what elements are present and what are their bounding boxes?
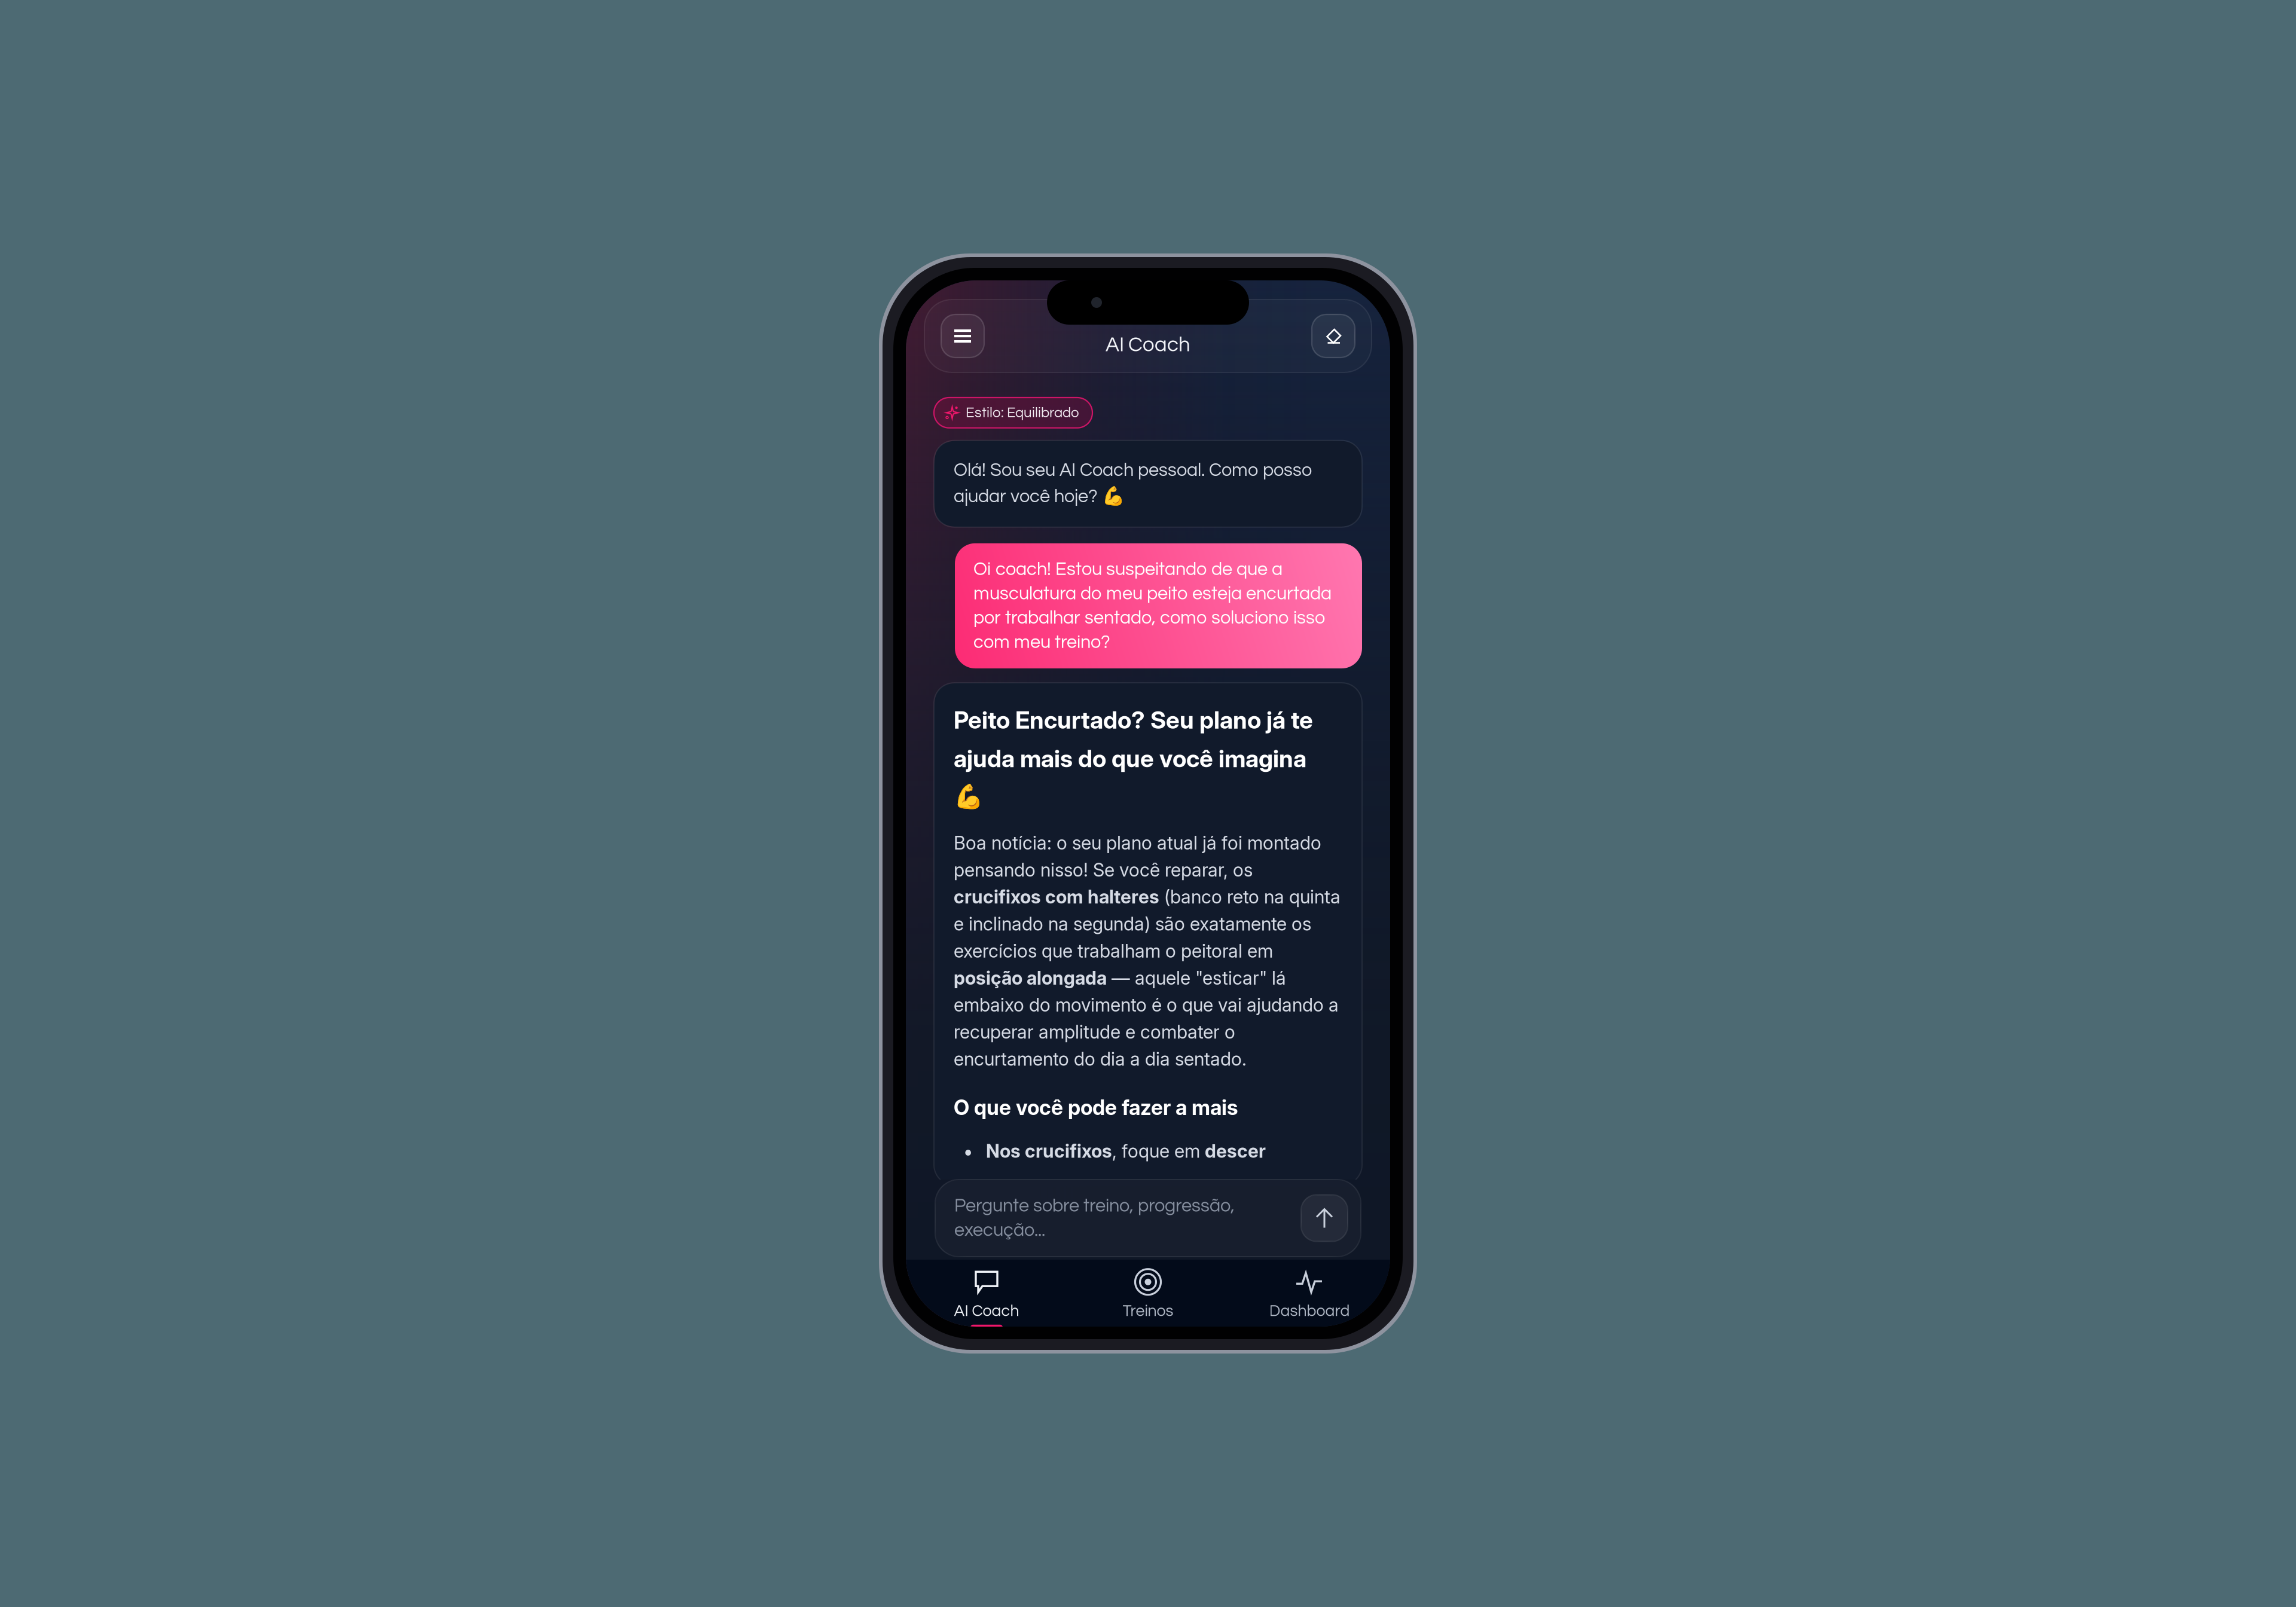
staticText: Peito Encurtado? Seu plano já te ajuda m… — [954, 706, 1313, 811]
staticText: Estilo: Equilibrado — [966, 405, 1079, 420]
button[interactable]: AI Coach — [906, 1260, 1067, 1327]
button[interactable]: Dashboard — [1229, 1260, 1390, 1327]
staticText: Nos crucifixos, foque em descer — [986, 1140, 1266, 1162]
button[interactable]: Treinos — [1067, 1260, 1229, 1327]
staticText: O que você pode fazer a mais — [954, 1095, 1238, 1120]
staticText: Pergunte sobre treino, progressão, execu… — [954, 1197, 1235, 1240]
staticText: Boa notícia: o seu plano atual já foi mo… — [954, 832, 1341, 1070]
staticText: • — [963, 1140, 973, 1162]
staticText: Oi coach! Estou suspeitando de que a mus… — [973, 560, 1332, 652]
staticText: AI Coach — [954, 1303, 1019, 1319]
staticText: Olá! Sou seu AI Coach pessoal. Como poss… — [954, 461, 1312, 507]
staticText: AI Coach — [1106, 334, 1190, 356]
button[interactable]: Limpar conversa — [1312, 314, 1355, 358]
staticText: Dashboard — [1269, 1303, 1350, 1319]
staticText: Treinos — [1123, 1303, 1173, 1319]
button[interactable]: Enviar — [1301, 1195, 1348, 1241]
button[interactable]: Menu — [941, 314, 984, 358]
button[interactable]: Estilo: Equilibrado — [934, 398, 1092, 428]
